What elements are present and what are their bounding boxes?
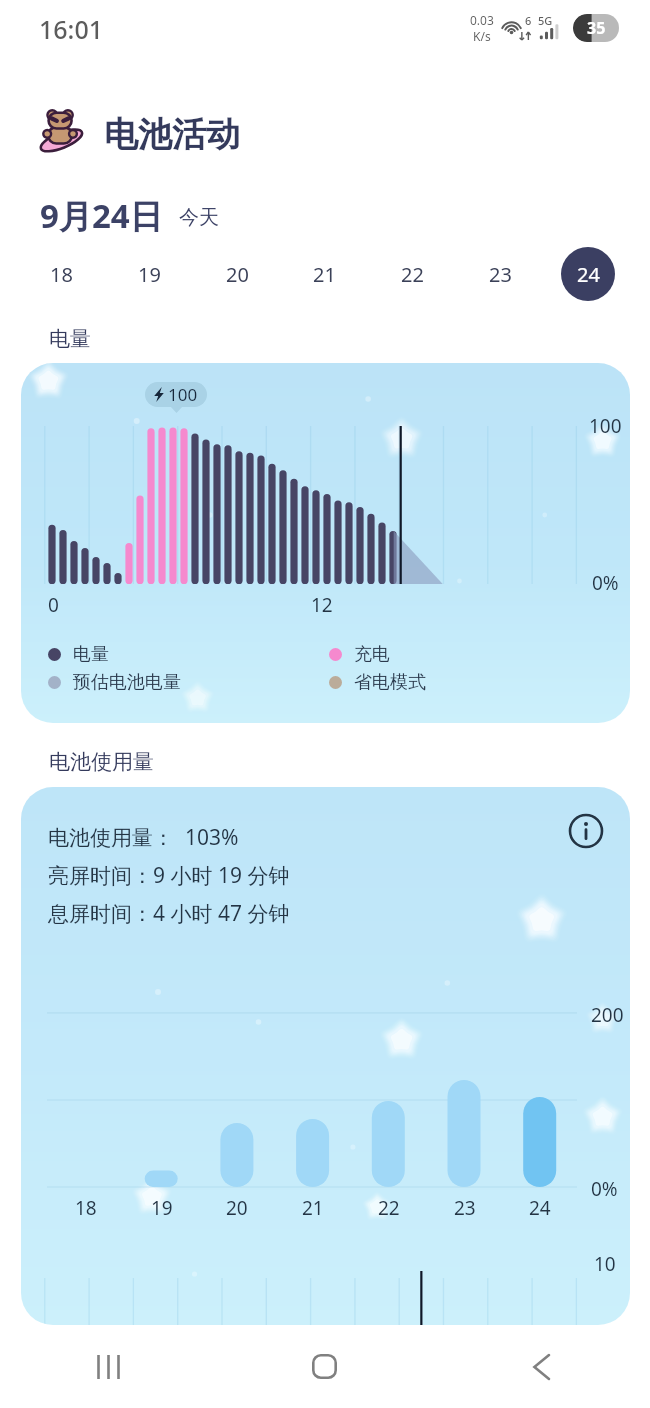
button[interactable]: 20 [210,247,264,301]
staticText: 电池活动 [104,113,240,156]
staticText: 12 [311,592,333,618]
staticText: 电池使用量 [49,749,154,775]
staticText: 35 [587,17,606,39]
button[interactable]: Recents [0,1325,216,1408]
staticText: 省电模式 [354,671,426,694]
staticText: 6 [525,13,532,28]
button[interactable]: 23 [473,247,527,301]
button[interactable]: 21 [297,247,351,301]
staticText: 电池使用量： 103% [48,823,239,852]
staticText: 19 [138,261,161,288]
staticText: 100 [168,383,198,406]
staticText: 22 [378,1195,400,1221]
staticText: 0.03 [470,12,494,28]
staticText: 今天 [179,205,219,230]
staticText: 18 [50,261,73,288]
staticText: 20 [226,1195,248,1221]
staticText: 9月24日 [40,193,163,238]
button[interactable]: 22 [385,247,439,301]
button[interactable]: 24 [561,247,615,301]
button[interactable]: 19 [122,247,176,301]
staticText: 24 [577,261,600,288]
staticText: 20 [226,261,249,288]
staticText: 18 [75,1195,97,1221]
staticText: 21 [302,1195,324,1221]
staticText: 息屏时间：4 小时 47 分钟 [48,899,290,928]
staticText: 充电 [354,643,390,666]
staticText: 16:01 [39,12,104,46]
staticText: 21 [313,261,336,288]
staticText: 23 [454,1195,476,1221]
staticText: 电量 [73,643,109,666]
staticText: 19 [151,1195,173,1221]
staticText: 5G [538,13,553,28]
staticText: 100 [589,413,622,439]
staticText: 0% [592,570,619,596]
staticText: 电量 [49,326,91,352]
staticText: 亮屏时间：9 小时 19 分钟 [48,861,290,890]
staticText: 23 [489,261,512,288]
staticText: K/s [473,28,491,44]
button[interactable]: Home [216,1325,433,1408]
staticText: 预估电池电量 [73,671,181,694]
button[interactable]: Info [568,813,604,849]
button[interactable]: 18 [34,247,88,301]
staticText: 0 [48,592,59,618]
staticText: 200 [591,1002,624,1028]
staticText: 10 [594,1251,616,1277]
staticText: 0% [591,1176,618,1202]
staticText: 22 [401,261,424,288]
button[interactable]: Back [433,1325,650,1408]
staticText: 24 [529,1195,551,1221]
